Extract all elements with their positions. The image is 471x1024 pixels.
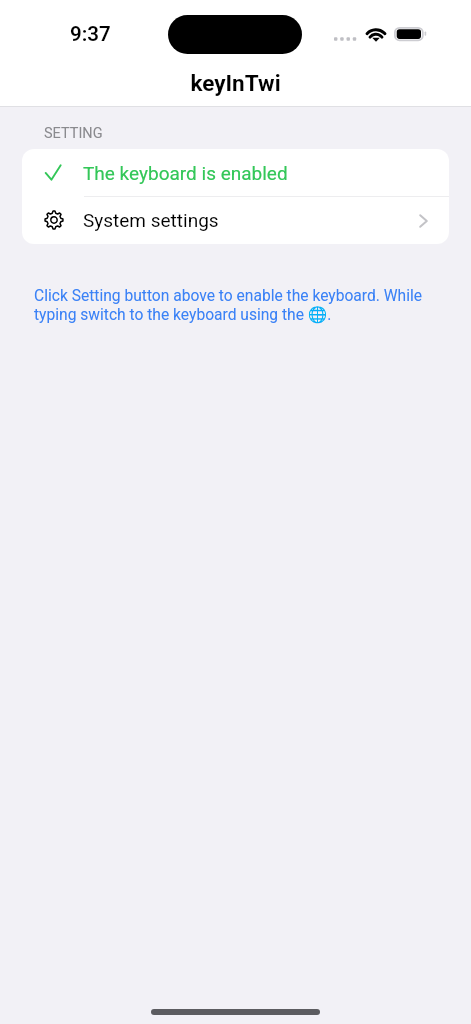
staticText: System settings: [83, 209, 219, 231]
other: Settings: [44, 210, 64, 230]
staticText: Click Setting button above to enable the…: [34, 287, 426, 324]
staticText: keyInTwi: [0, 70, 471, 96]
button[interactable]: Settings: [22, 197, 449, 244]
other: Wi-Fi: [365, 26, 387, 42]
staticText: SETTING: [44, 125, 103, 142]
staticText: The keyboard is enabled: [83, 162, 288, 184]
other: Open system settings: [419, 214, 428, 228]
button[interactable]: Enabled: [22, 149, 449, 196]
other: Enabled: [45, 165, 61, 180]
staticText: 9:37: [70, 22, 111, 46]
other: Cellular signal: [334, 36, 357, 42]
other: Battery: [394, 27, 428, 43]
